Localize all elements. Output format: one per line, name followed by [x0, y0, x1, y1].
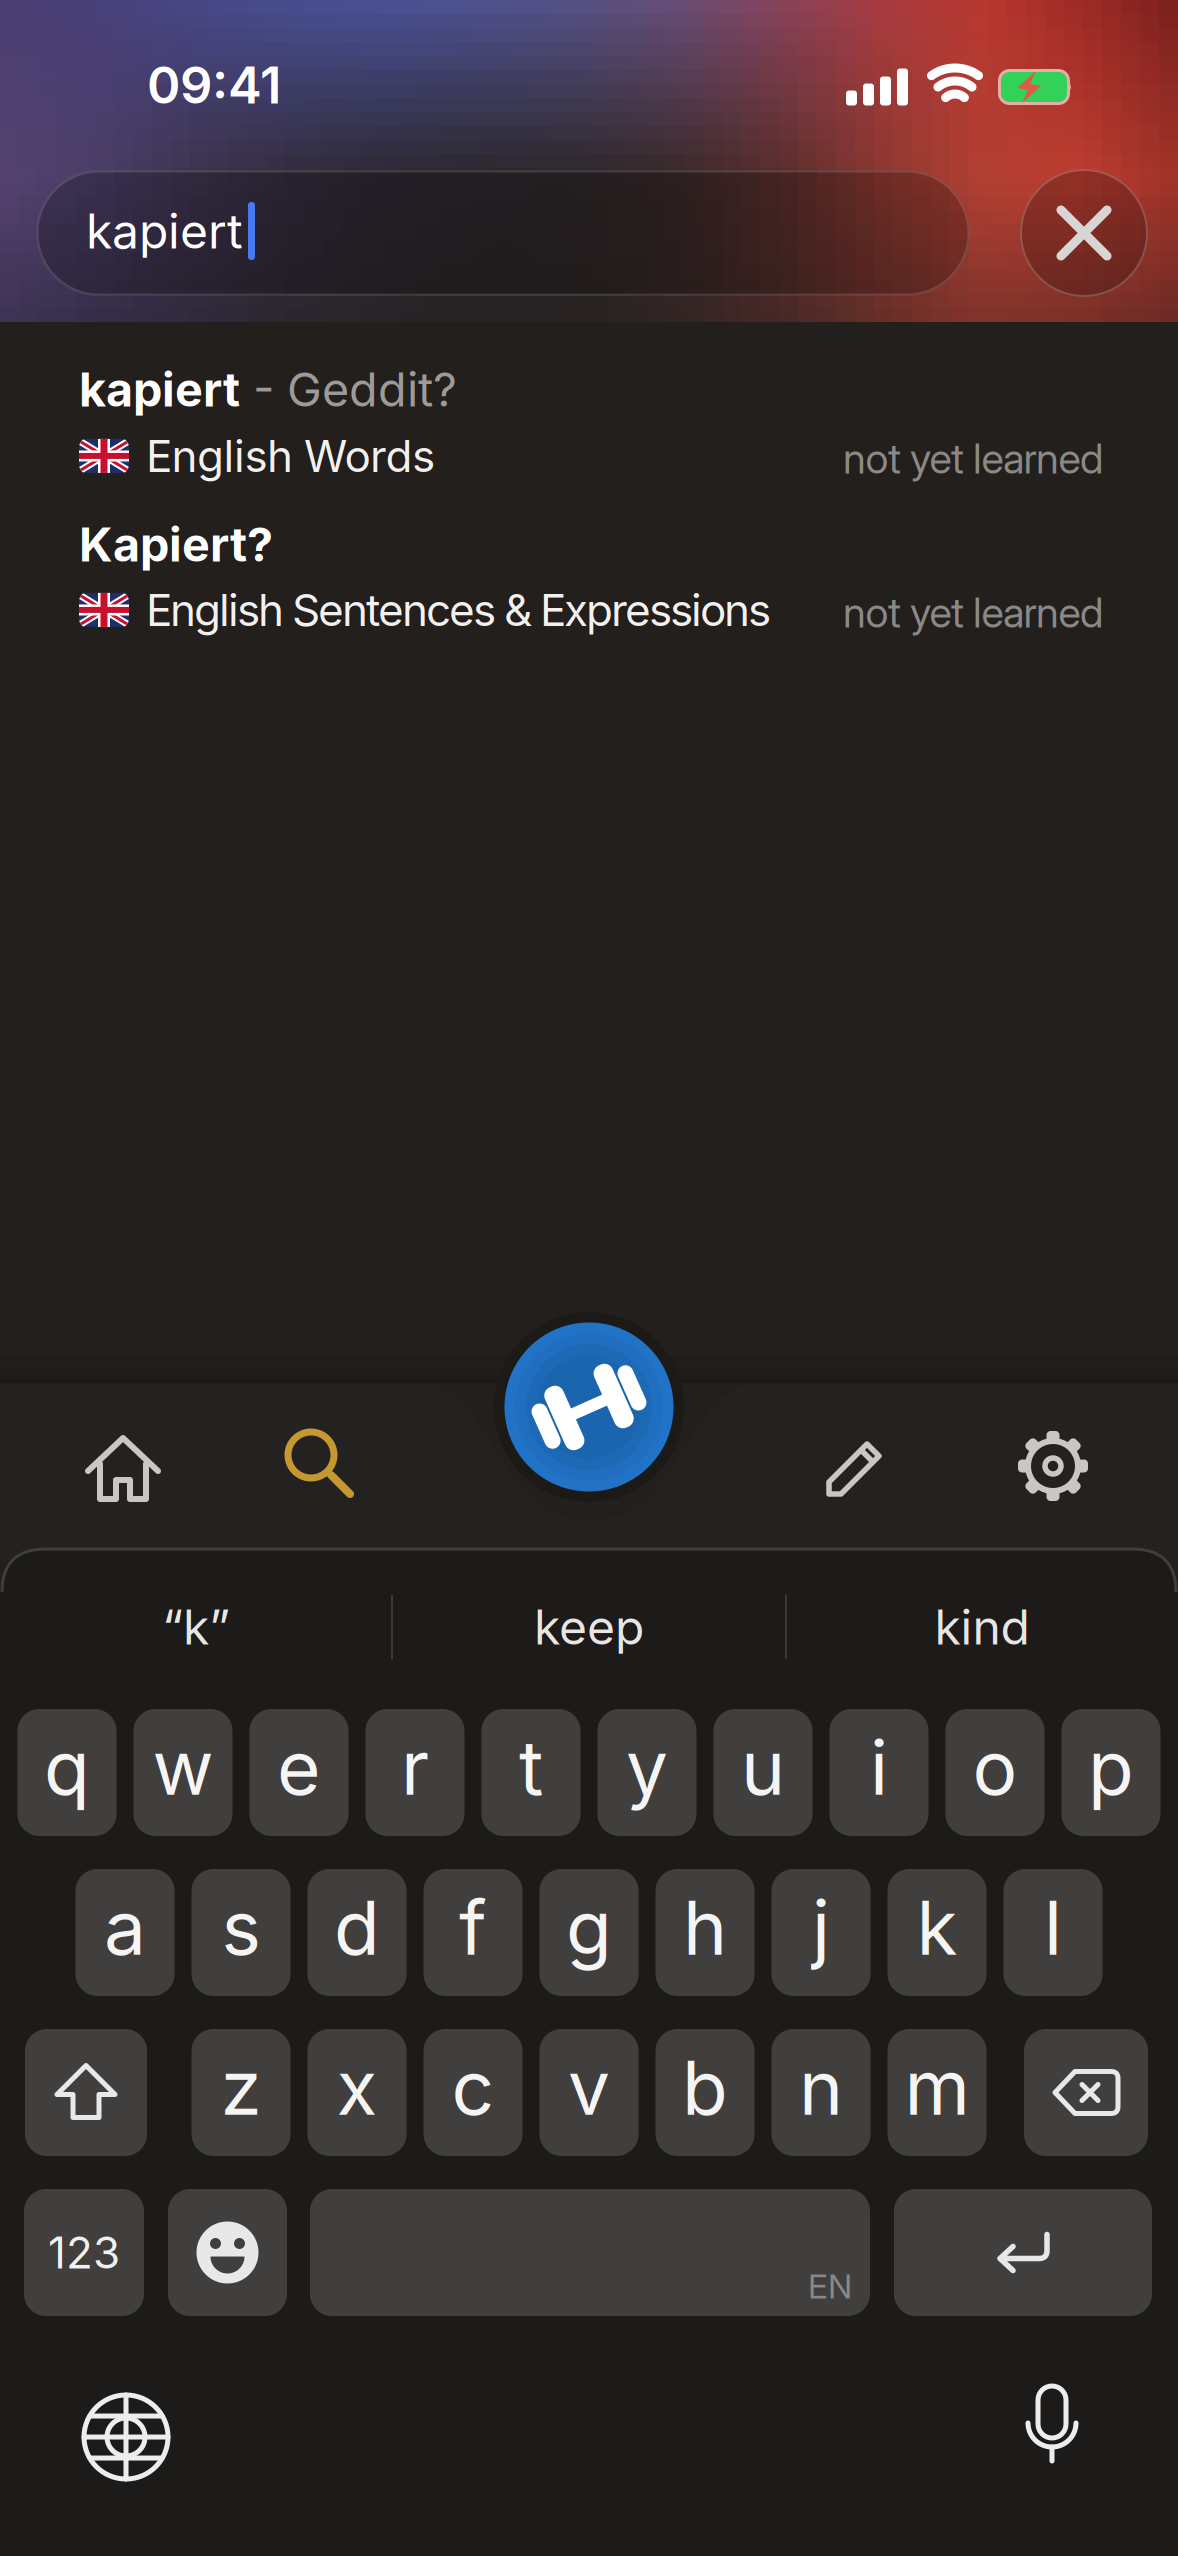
- staticText: English Sentences & Expressions: [146, 584, 771, 636]
- button[interactable]: f: [423, 1869, 522, 1996]
- button[interactable]: Next keyboard: [81, 2392, 171, 2482]
- button[interactable]: v: [539, 2029, 638, 2156]
- button[interactable]: kind: [792, 1583, 1172, 1671]
- staticText: k: [916, 1883, 957, 1972]
- staticText: 123: [48, 2226, 120, 2278]
- staticText: w: [152, 1723, 213, 1812]
- button[interactable]: w: [133, 1709, 232, 1836]
- button[interactable]: c: [423, 2029, 522, 2156]
- staticText: “k”: [162, 1599, 230, 1655]
- staticText: English Words: [146, 430, 435, 482]
- button[interactable]: Space: [310, 2189, 870, 2316]
- staticText: q: [44, 1723, 90, 1812]
- staticText: y: [626, 1723, 668, 1812]
- button[interactable]: Clear search: [1020, 169, 1148, 297]
- staticText: p: [1088, 1723, 1134, 1812]
- button[interactable]: q: [17, 1709, 116, 1836]
- staticText: f: [459, 1883, 487, 1972]
- staticText: s: [221, 1883, 260, 1972]
- button[interactable]: h: [655, 1869, 754, 1996]
- button[interactable]: kapiert: [36, 170, 970, 296]
- staticText: a: [104, 1883, 146, 1972]
- staticText: x: [336, 2043, 377, 2132]
- button[interactable]: j: [771, 1869, 870, 1996]
- button[interactable]: Practice: [504, 1322, 673, 1491]
- button[interactable]: Numbers: [24, 2189, 144, 2316]
- button[interactable]: p: [1061, 1709, 1160, 1836]
- button[interactable]: Shift: [25, 2029, 147, 2156]
- button[interactable]: Settings: [1015, 1428, 1091, 1504]
- button[interactable]: y: [597, 1709, 696, 1836]
- staticText: Kapiert?: [79, 517, 273, 572]
- button[interactable]: Dictate: [1019, 2383, 1085, 2477]
- button[interactable]: e: [249, 1709, 348, 1836]
- staticText: m: [904, 2043, 969, 2132]
- staticText: n: [799, 2043, 843, 2132]
- staticText: keep: [534, 1599, 644, 1655]
- staticText: l: [1044, 1883, 1062, 1972]
- staticText: t: [519, 1723, 543, 1812]
- button[interactable]: g: [539, 1869, 638, 1996]
- staticText: j: [812, 1883, 830, 1972]
- button[interactable]: a: [75, 1869, 174, 1996]
- button[interactable]: o: [945, 1709, 1044, 1836]
- staticText: not yet learned: [843, 588, 1103, 637]
- staticText: - Geddit?: [240, 362, 457, 417]
- staticText: kind: [934, 1599, 1029, 1655]
- button[interactable]: l: [1003, 1869, 1102, 1996]
- button[interactable]: s: [191, 1869, 290, 1996]
- button[interactable]: kapiert: [40, 346, 1140, 496]
- staticText: u: [741, 1723, 785, 1812]
- button[interactable]: Home: [83, 1429, 163, 1505]
- button[interactable]: m: [887, 2029, 986, 2156]
- button[interactable]: d: [307, 1869, 406, 1996]
- staticText: c: [451, 2043, 494, 2132]
- button[interactable]: x: [307, 2029, 406, 2156]
- button[interactable]: “k”: [6, 1583, 386, 1671]
- button[interactable]: Kapiert?: [40, 500, 1140, 650]
- staticText: z: [220, 2043, 261, 2132]
- button[interactable]: Edit: [821, 1430, 893, 1502]
- staticText: e: [277, 1723, 321, 1812]
- button[interactable]: n: [771, 2029, 870, 2156]
- button[interactable]: i: [829, 1709, 928, 1836]
- staticText: h: [683, 1883, 727, 1972]
- staticText: kapiert: [79, 362, 240, 417]
- button[interactable]: Return: [894, 2189, 1152, 2316]
- staticText: not yet learned: [843, 434, 1103, 483]
- button[interactable]: r: [365, 1709, 464, 1836]
- button[interactable]: u: [713, 1709, 812, 1836]
- button[interactable]: z: [191, 2029, 290, 2156]
- staticText: r: [401, 1723, 429, 1812]
- button[interactable]: Emoji: [168, 2189, 287, 2316]
- staticText: i: [870, 1723, 888, 1812]
- staticText: kapiert: [86, 203, 243, 259]
- button[interactable]: Search: [284, 1428, 356, 1500]
- staticText: d: [334, 1883, 380, 1972]
- staticText: v: [568, 2043, 610, 2132]
- button[interactable]: k: [887, 1869, 986, 1996]
- staticText: EN: [808, 2267, 852, 2306]
- staticText: o: [972, 1723, 1017, 1812]
- button[interactable]: keep: [399, 1583, 779, 1671]
- staticText: 09:41: [147, 55, 281, 115]
- staticText: b: [682, 2043, 728, 2132]
- button[interactable]: Delete: [1024, 2029, 1148, 2156]
- button[interactable]: t: [481, 1709, 580, 1836]
- button[interactable]: b: [655, 2029, 754, 2156]
- staticText: g: [566, 1883, 612, 1972]
